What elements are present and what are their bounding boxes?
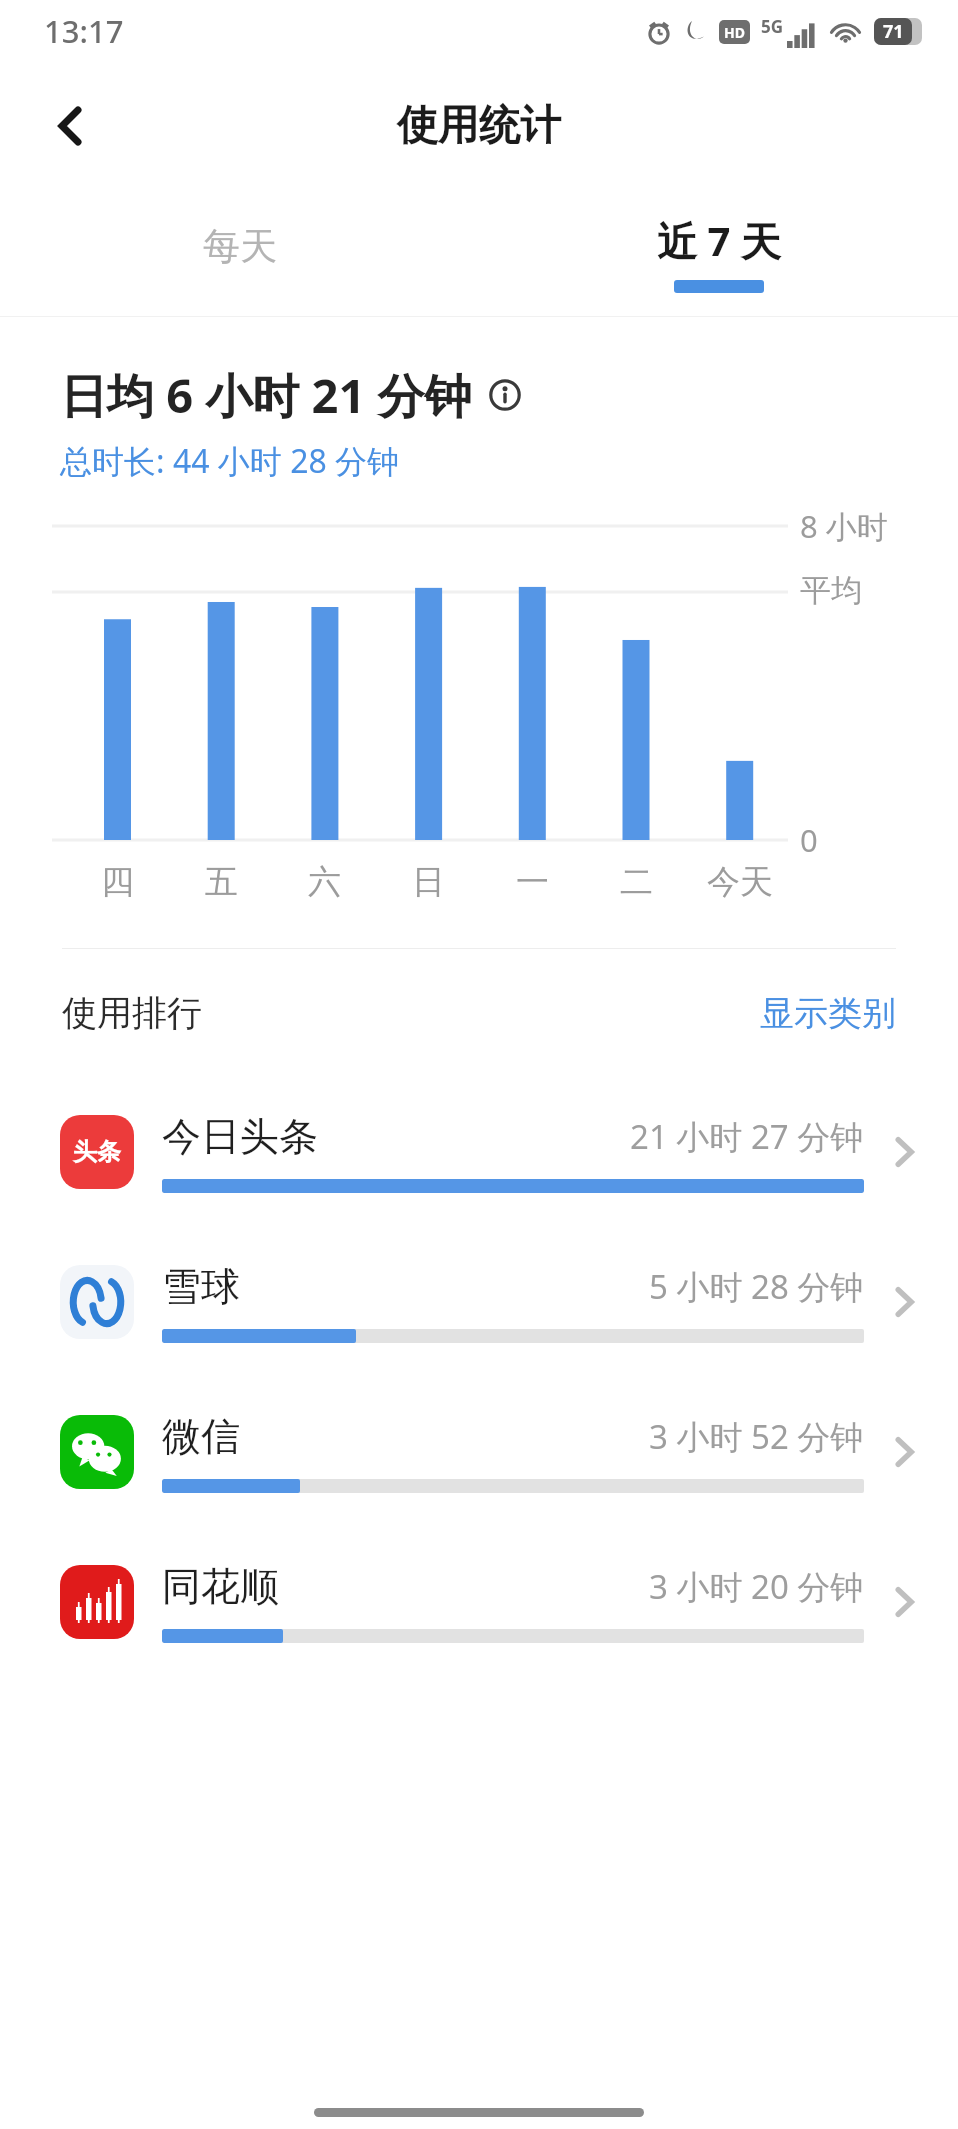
staticText: 3 小时 52 分钟 <box>649 1414 864 1459</box>
staticText: 13:17 <box>44 10 124 52</box>
staticText: 0 <box>800 819 818 861</box>
staticText: 今天 <box>707 861 773 903</box>
button[interactable]: 头条 <box>0 1077 958 1227</box>
button[interactable]: 雪球 <box>0 1227 958 1377</box>
staticText: 二 <box>620 861 653 903</box>
staticText: 一 <box>516 861 549 903</box>
staticText: 总时长: 44 小时 28 分钟 <box>60 439 400 483</box>
button[interactable]: 同花顺 <box>0 1527 958 1677</box>
staticText: 六 <box>308 861 341 903</box>
button[interactable]: 每天 <box>0 190 479 316</box>
staticText: 近 7 天 <box>657 213 781 268</box>
staticText: 头条 <box>73 1137 121 1167</box>
staticText: 每天 <box>203 223 277 270</box>
staticText: 显示类别 <box>760 992 896 1035</box>
button[interactable]: 近 7 天 <box>479 190 958 316</box>
staticText: 五 <box>205 861 238 903</box>
staticText: 平均 <box>800 571 862 610</box>
staticText: 21 小时 27 分钟 <box>630 1114 864 1159</box>
button[interactable]: 说明 <box>484 374 526 416</box>
staticText: 使用排行 <box>62 991 202 1035</box>
staticText: 3 小时 20 分钟 <box>649 1564 864 1609</box>
button[interactable]: 微信 <box>0 1377 958 1527</box>
staticText: 同花顺 <box>162 1562 279 1611</box>
staticText: 5 小时 28 分钟 <box>649 1264 864 1309</box>
staticText: 5G <box>761 15 784 38</box>
staticText: 71 <box>883 19 904 44</box>
staticText: 雪球 <box>162 1262 240 1311</box>
button[interactable]: 显示类别 <box>760 992 896 1035</box>
staticText: 使用统计 <box>397 100 561 152</box>
staticText: 日 <box>412 861 445 903</box>
staticText: 微信 <box>162 1412 240 1461</box>
staticText: 日均 6 小时 21 分钟 <box>60 363 472 427</box>
staticText: 8 小时 <box>800 505 888 547</box>
staticText: 四 <box>101 861 134 903</box>
button[interactable]: 返回 <box>28 84 112 168</box>
staticText: HD <box>724 23 745 42</box>
staticText: 今日头条 <box>162 1112 318 1161</box>
